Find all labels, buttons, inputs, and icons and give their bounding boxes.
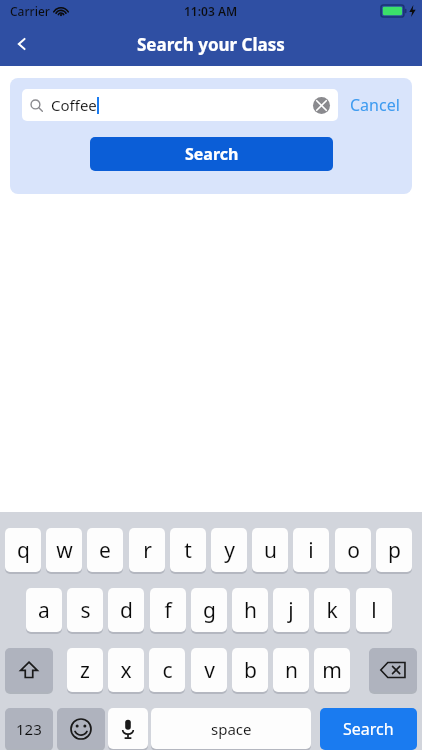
button[interactable]: m: [314, 648, 350, 692]
staticText: i: [308, 536, 314, 565]
staticText: 11:03 AM: [184, 3, 238, 19]
staticText: 123: [16, 719, 42, 739]
button[interactable]: a: [26, 588, 62, 632]
button[interactable]: t: [170, 528, 206, 572]
staticText: s: [80, 596, 91, 625]
button[interactable]: Coffee: [22, 89, 338, 121]
staticText: k: [326, 596, 338, 625]
button[interactable]: x: [108, 648, 144, 692]
staticText: f: [164, 596, 172, 625]
staticText: b: [244, 656, 257, 685]
staticText: v: [204, 656, 215, 685]
button[interactable]: Search: [90, 137, 333, 171]
button[interactable]: Numbers: [5, 708, 53, 749]
button[interactable]: p: [376, 528, 412, 572]
staticText: a: [38, 596, 50, 625]
button[interactable]: Shift: [5, 648, 53, 692]
button[interactable]: s: [67, 588, 103, 632]
button[interactable]: Backspace: [369, 648, 417, 692]
staticText: m: [322, 656, 342, 685]
button[interactable]: f: [150, 588, 186, 632]
staticText: Search your Class: [137, 33, 285, 56]
button[interactable]: q: [5, 528, 41, 572]
button[interactable]: r: [129, 528, 165, 572]
staticText: p: [388, 536, 401, 565]
staticText: j: [288, 596, 294, 625]
staticText: r: [143, 536, 152, 565]
staticText: Carrier: [10, 3, 50, 19]
staticText: d: [120, 596, 133, 625]
button[interactable]: Emoji: [57, 708, 105, 749]
button[interactable]: b: [232, 648, 268, 692]
button[interactable]: d: [108, 588, 144, 632]
button[interactable]: Clear text: [313, 97, 330, 114]
staticText: l: [371, 596, 377, 625]
button[interactable]: g: [191, 588, 227, 632]
button[interactable]: i: [293, 528, 329, 572]
button[interactable]: Space: [151, 708, 311, 749]
button[interactable]: k: [314, 588, 350, 632]
staticText: g: [203, 596, 216, 625]
button[interactable]: c: [149, 648, 185, 692]
staticText: z: [80, 656, 90, 685]
button[interactable]: z: [67, 648, 103, 692]
staticText: n: [285, 656, 298, 685]
staticText: q: [17, 536, 30, 565]
staticText: y: [224, 536, 235, 565]
staticText: h: [244, 596, 257, 625]
button[interactable]: y: [211, 528, 247, 572]
button[interactable]: e: [87, 528, 123, 572]
staticText: space: [211, 719, 252, 739]
staticText: Cancel: [350, 94, 400, 116]
button[interactable]: n: [273, 648, 309, 692]
button[interactable]: Dictate: [108, 708, 148, 749]
staticText: x: [120, 656, 132, 685]
button[interactable]: u: [252, 528, 288, 572]
button[interactable]: o: [335, 528, 371, 572]
staticText: e: [99, 536, 111, 565]
staticText: t: [184, 536, 192, 565]
staticText: Search: [185, 143, 239, 165]
staticText: Search: [343, 718, 394, 740]
button[interactable]: v: [191, 648, 227, 692]
staticText: w: [56, 536, 73, 565]
button[interactable]: l: [356, 588, 392, 632]
button[interactable]: Search: [320, 708, 417, 750]
button[interactable]: Cancel: [348, 90, 402, 120]
staticText: u: [264, 536, 277, 565]
staticText: c: [162, 656, 173, 685]
staticText: Coffee: [51, 95, 97, 115]
staticText: o: [347, 536, 360, 565]
button[interactable]: Back: [0, 22, 44, 66]
button[interactable]: j: [273, 588, 309, 632]
button[interactable]: w: [46, 528, 82, 572]
button[interactable]: h: [232, 588, 268, 632]
